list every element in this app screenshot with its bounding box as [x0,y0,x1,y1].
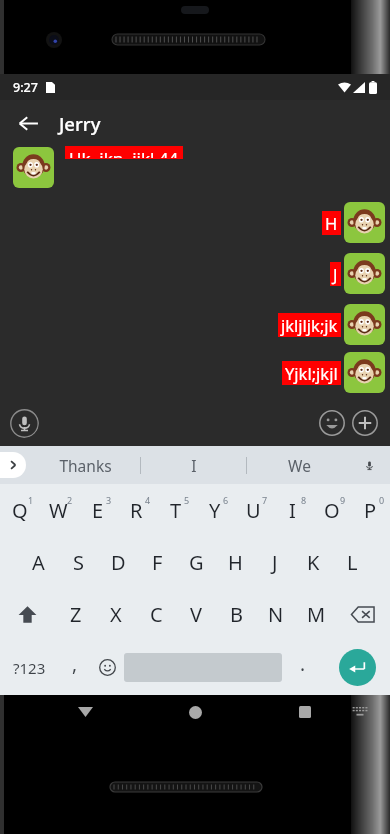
staticText: Uk jkn jikl 44 [69,147,179,158]
button[interactable]: More suggestions [0,452,26,478]
staticText: jkljljk;jk [281,314,338,336]
staticText: Thanks [59,455,112,476]
staticText: S [73,549,84,576]
staticText: I [289,497,296,524]
button[interactable]: Home [173,695,217,729]
button[interactable]: H [322,211,341,235]
staticText: . [300,651,306,677]
button[interactable]: P [351,484,390,536]
button[interactable]: Backspace [336,588,390,640]
button[interactable]: B [216,588,256,640]
button[interactable]: Shift [0,588,55,640]
button[interactable]: U [234,484,273,536]
button[interactable]: Voice typing [352,446,386,484]
button[interactable]: Contact avatar [13,147,54,188]
button[interactable]: G [177,536,216,588]
staticText: N [268,601,284,628]
button[interactable]: We [247,446,352,484]
button[interactable]: Contact avatar [344,304,385,345]
button[interactable]: . [282,640,324,695]
staticText: H [228,549,243,576]
button[interactable]: V [176,588,216,640]
staticText: , [72,651,78,677]
staticText: A [32,549,45,576]
button[interactable]: Switch keyboard [345,697,375,727]
button[interactable]: Emoji keyboard [91,640,124,695]
staticText: 2 [67,494,73,506]
button[interactable]: Uk jkn jikl 44 [65,146,183,159]
button[interactable]: X [96,588,136,640]
button[interactable]: H [216,536,255,588]
button[interactable]: C [136,588,176,640]
staticText: G [189,549,204,576]
staticText: E [92,497,104,524]
staticText: T [170,497,182,524]
staticText: J [272,549,278,576]
staticText: X [110,601,122,628]
button[interactable]: J [255,536,294,588]
button[interactable]: Contact avatar [344,253,385,294]
button[interactable]: W [39,484,78,536]
staticText: 4 [145,494,151,506]
staticText: 3 [106,494,112,506]
button[interactable]: jkljljk;jk [278,313,341,337]
staticText: 1 [28,494,34,506]
button[interactable]: Contact avatar [344,352,385,393]
staticText: H [325,212,338,234]
staticText: 9:27 [13,79,38,96]
staticText: P [364,497,377,524]
button[interactable]: J [330,262,341,286]
staticText: J [333,263,338,285]
staticText: K [307,549,320,576]
button[interactable]: Q [0,484,39,536]
button[interactable]: F [138,536,177,588]
staticText: 5 [184,494,190,506]
staticText: We [288,455,311,476]
button[interactable]: Emoji [317,408,347,438]
staticText: 7 [262,494,268,506]
button[interactable]: Yjkl;jkjl [282,361,341,385]
staticText: D [111,549,126,576]
button[interactable]: S [58,536,98,588]
button[interactable]: T [156,484,195,536]
staticText: W [49,497,68,524]
button[interactable]: E [78,484,117,536]
button[interactable]: A [18,536,58,588]
button[interactable]: R [117,484,156,536]
button[interactable]: Thanks [30,446,140,484]
button[interactable]: , [58,640,91,695]
button[interactable]: O [312,484,351,536]
button[interactable]: D [98,536,138,588]
staticText: M [307,601,326,628]
button[interactable]: Back [63,695,107,729]
staticText: O [324,497,340,524]
button[interactable]: I [141,446,246,484]
staticText: B [230,601,243,628]
staticText: ?123 [13,658,46,678]
button[interactable]: L [333,536,372,588]
button[interactable]: M [296,588,336,640]
staticText: 0 [379,494,385,506]
staticText: Z [70,601,82,628]
button[interactable]: Contact avatar [344,202,385,243]
button[interactable]: Z [55,588,96,640]
button[interactable]: Recent apps [283,695,327,729]
button[interactable]: Send [339,649,376,686]
staticText: 8 [301,494,307,506]
staticText: Jerry [59,111,101,136]
staticText: U [246,497,261,524]
button[interactable]: Y [195,484,234,536]
staticText: C [150,601,163,628]
staticText: F [152,549,163,576]
staticText: Y [209,497,221,524]
button[interactable]: Back [8,103,48,143]
button[interactable]: N [256,588,296,640]
staticText: 6 [223,494,229,506]
button[interactable]: Add attachment [350,408,380,438]
button[interactable]: I [273,484,312,536]
button[interactable]: K [294,536,333,588]
button[interactable]: Voice input [9,408,39,438]
staticText: Yjkl;jkjl [285,362,338,384]
button[interactable]: ?123 [0,640,58,695]
